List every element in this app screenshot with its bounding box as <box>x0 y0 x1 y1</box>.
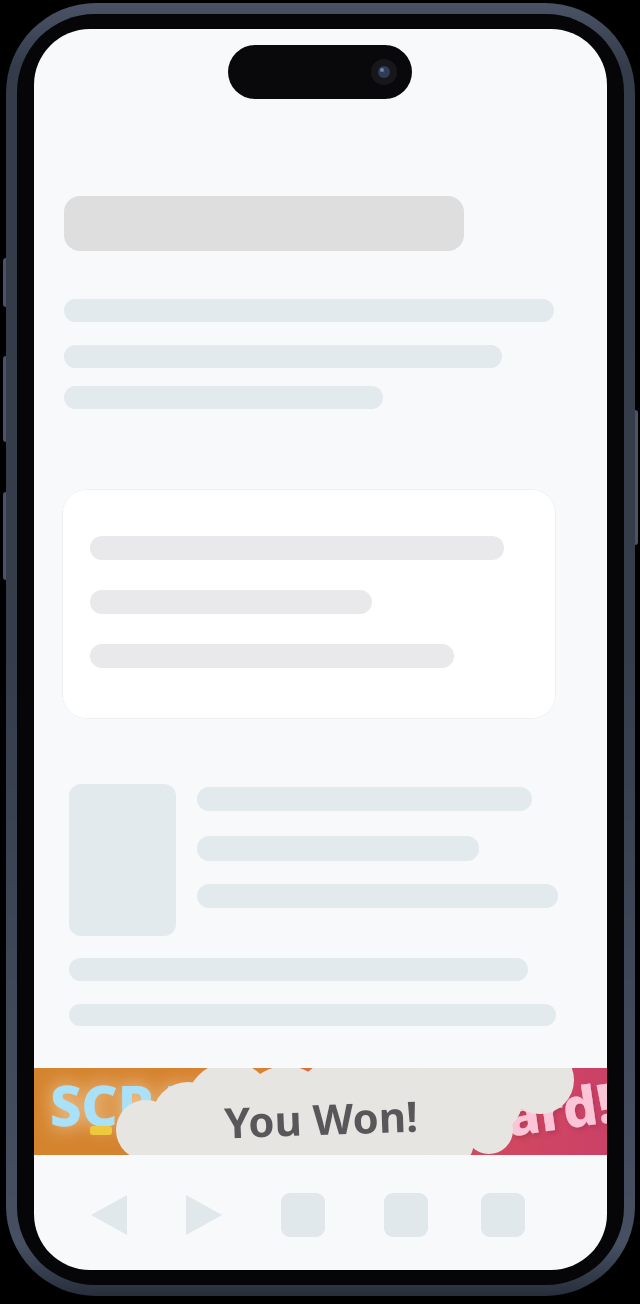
button[interactable] <box>62 489 556 719</box>
button[interactable] <box>281 1193 325 1237</box>
staticText: You Won! <box>223 1087 419 1150</box>
staticText: SCRATCH <box>50 1068 302 1142</box>
button[interactable] <box>384 1193 428 1237</box>
button[interactable] <box>186 1195 222 1235</box>
button[interactable] <box>481 1193 525 1237</box>
staticText: board! <box>434 1068 607 1155</box>
button[interactable]: SCRATCH <box>34 1068 607 1155</box>
button[interactable] <box>91 1195 127 1235</box>
